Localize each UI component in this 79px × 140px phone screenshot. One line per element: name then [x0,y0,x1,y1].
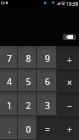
button[interactable]: . [0,116,17,139]
staticText: . [8,124,11,136]
staticText: 6 [45,76,50,88]
button[interactable]: 2 [18,92,36,115]
button[interactable]: ÷ [57,46,79,68]
staticText: 9 [45,53,50,65]
staticText: 3 [45,100,50,112]
button[interactable]: 1 [0,92,17,115]
staticText: = [45,124,50,135]
staticText: 7 [7,53,12,65]
staticText: 8 [26,53,31,65]
button[interactable]: 8 [18,46,36,68]
staticText: × [67,77,72,88]
staticText: + [67,124,72,135]
staticText: 4 [7,76,12,88]
staticText: − [67,100,72,111]
staticText: ÷ [67,54,72,65]
button[interactable]: Backspace [63,34,76,40]
button[interactable]: 9 [37,46,56,68]
button[interactable]: + [57,116,79,139]
button[interactable]: 5 [18,69,36,91]
button[interactable]: 7 [0,46,17,68]
staticText: 5 [26,76,31,88]
button[interactable]: = [37,116,56,139]
staticText: 1 [7,100,12,112]
button[interactable]: 6 [37,69,56,91]
staticText: 2 [26,100,31,112]
button[interactable]: 3 [37,92,56,115]
button[interactable]: 0 [18,116,36,139]
staticText: 0 [26,124,31,136]
staticText: 19:38 [66,1,79,8]
button[interactable]: − [57,92,79,115]
button[interactable]: 4 [0,69,17,91]
button[interactable]: × [57,69,79,91]
